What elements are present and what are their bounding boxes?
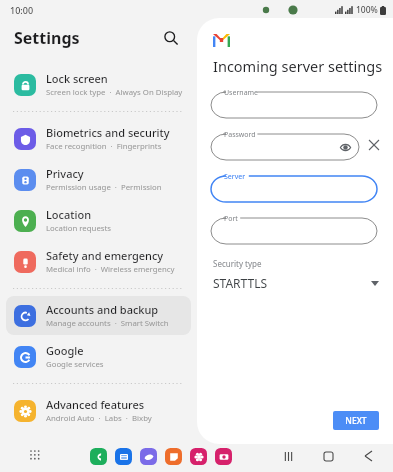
- button[interactable]: Recents: [277, 445, 299, 467]
- button[interactable]: Show password: [337, 139, 353, 155]
- button[interactable]: Password: [211, 130, 359, 160]
- staticText: Permission usage · Permission manager: [46, 182, 183, 193]
- button[interactable]: Apps: [26, 446, 46, 466]
- staticText: 10:00: [10, 4, 34, 16]
- button[interactable]: Privacy: [6, 160, 191, 199]
- staticText: Screen lock type · Always On Display: [46, 87, 183, 98]
- button[interactable]: Notes: [165, 448, 182, 465]
- staticText: Location requests: [46, 223, 112, 234]
- staticText: Location: [46, 207, 92, 222]
- staticText: STARTTLS: [213, 275, 268, 291]
- staticText: Advanced features: [46, 397, 145, 412]
- staticText: Server: [224, 172, 246, 182]
- staticText: Username: [224, 88, 259, 98]
- staticText: Google services: [46, 359, 104, 370]
- staticText: Google: [46, 343, 84, 358]
- button[interactable]: Search: [158, 25, 184, 51]
- button[interactable]: STARTTLS: [211, 275, 379, 291]
- button[interactable]: Biometrics and security: [6, 119, 191, 158]
- staticText: Face recognition · Fingerprints: [46, 141, 162, 152]
- staticText: Security type: [213, 258, 262, 269]
- button[interactable]: Internet: [140, 448, 157, 465]
- staticText: Safety and emergency: [46, 248, 164, 263]
- button[interactable]: Google: [6, 337, 191, 376]
- staticText: Medical info · Wireless emergency alerts: [46, 264, 183, 275]
- staticText: Android Auto · Labs · Bixby Routines: [46, 413, 183, 424]
- button[interactable]: Advanced features: [6, 391, 191, 430]
- button[interactable]: Safety and emergency: [6, 242, 191, 281]
- button[interactable]: Camera: [215, 448, 232, 465]
- staticText: Settings: [14, 27, 80, 49]
- button[interactable]: Home: [317, 445, 339, 467]
- staticText: 100%: [356, 4, 378, 16]
- button[interactable]: Server: [211, 172, 377, 202]
- staticText: Lock screen: [46, 71, 108, 86]
- button[interactable]: Username: [211, 88, 377, 118]
- staticText: Manage accounts · Smart Switch: [46, 318, 169, 329]
- staticText: NEXT: [345, 415, 367, 427]
- staticText: Port: [224, 214, 238, 224]
- staticText: Password: [224, 130, 256, 140]
- staticText: Incoming server settings: [213, 56, 383, 76]
- button[interactable]: Clear password: [365, 136, 383, 154]
- button[interactable]: Location: [6, 201, 191, 240]
- staticText: Accounts and backup: [46, 302, 159, 317]
- button[interactable]: NEXT: [333, 411, 379, 430]
- button[interactable]: Phone: [90, 448, 107, 465]
- button[interactable]: Accounts and backup: [6, 296, 191, 335]
- button[interactable]: Gallery: [190, 448, 207, 465]
- staticText: Biometrics and security: [46, 125, 170, 140]
- button[interactable]: Back: [357, 445, 379, 467]
- staticText: Privacy: [46, 166, 84, 181]
- button[interactable]: Lock screen: [6, 65, 191, 104]
- button[interactable]: Port: [211, 214, 377, 244]
- button[interactable]: Messages: [115, 448, 132, 465]
